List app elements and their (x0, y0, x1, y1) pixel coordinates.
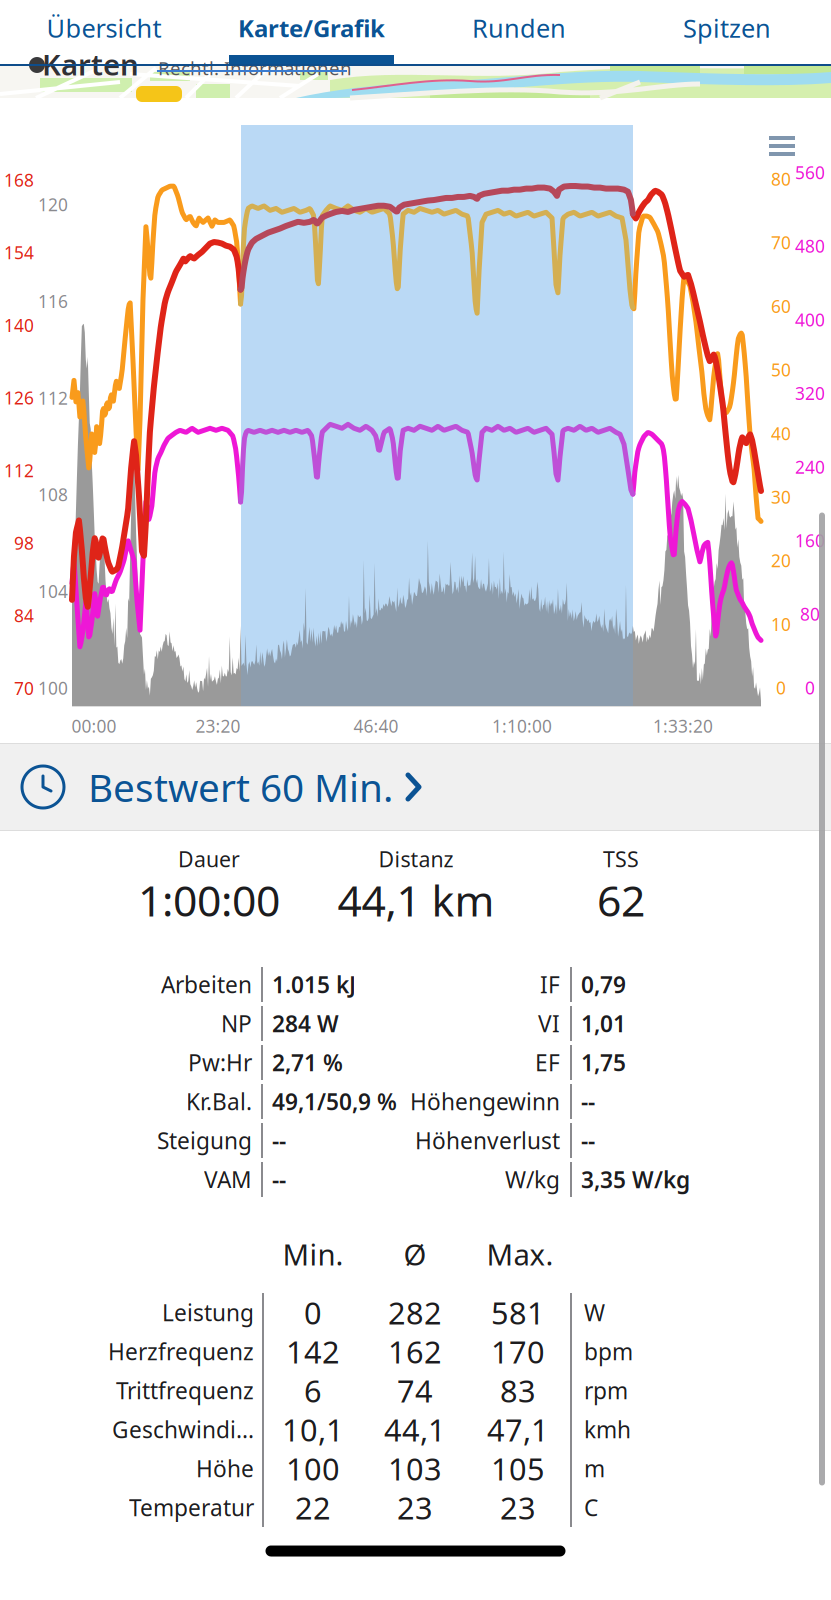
button[interactable]: Spitzen (623, 0, 831, 64)
staticText: 0 (805, 676, 815, 699)
staticText: EF (535, 1047, 560, 1077)
staticText: 1.015 kJ (272, 969, 356, 999)
staticText: 70 (14, 677, 34, 700)
staticText: 0 (304, 1292, 322, 1333)
staticText: -- (272, 1125, 286, 1155)
staticText: 62 (597, 872, 645, 928)
staticText: Kr.Bal. (186, 1086, 252, 1116)
staticText: Arbeiten (161, 969, 252, 999)
staticText: Geschwindi... (112, 1414, 254, 1444)
staticText: 480 (795, 235, 825, 258)
staticText: Min. (282, 1234, 343, 1273)
staticText: VAM (204, 1164, 252, 1194)
staticText: 170 (491, 1331, 545, 1372)
staticText: 108 (38, 483, 68, 506)
button[interactable]: Karte/Grafik (208, 0, 415, 64)
staticText: 60 (771, 295, 791, 318)
staticText: 44,1 km (337, 872, 494, 928)
staticText: 120 (38, 193, 68, 216)
staticText: Pw:Hr (188, 1047, 252, 1077)
staticText: 80 (800, 603, 820, 626)
staticText: Übersicht (46, 11, 161, 45)
staticText: Max. (486, 1234, 553, 1273)
staticText: Höhengewinn (410, 1086, 560, 1116)
staticText: W/kg (505, 1164, 560, 1194)
staticText: 2,71 % (272, 1047, 343, 1077)
staticText: -- (581, 1086, 595, 1116)
staticText: 40 (771, 422, 791, 445)
staticText: 160 (795, 529, 825, 552)
staticText: 23:20 (195, 714, 240, 737)
staticText: 162 (388, 1331, 442, 1372)
staticText: 3,35 W/kg (581, 1164, 690, 1194)
staticText: TSS (603, 845, 639, 873)
staticText: 104 (38, 580, 68, 603)
staticText: Leistung (162, 1297, 254, 1327)
staticText: 140 (4, 314, 34, 337)
staticText: 44,1 (384, 1409, 446, 1450)
staticText: Karten (42, 44, 139, 83)
staticText: 1,75 (581, 1047, 626, 1077)
staticText: Distanz (378, 845, 453, 873)
staticText: VI (538, 1008, 560, 1038)
staticText: 47,1 (487, 1409, 549, 1450)
staticText: 0,79 (581, 969, 626, 999)
staticText: 103 (388, 1448, 442, 1489)
staticText: W (584, 1297, 605, 1327)
staticText: Runden (472, 11, 566, 45)
staticText: 46:40 (353, 714, 398, 737)
staticText: 105 (491, 1448, 545, 1489)
staticText: 10 (771, 613, 791, 636)
staticText: 320 (795, 382, 825, 405)
staticText: 581 (491, 1292, 545, 1333)
staticText: Dauer (178, 845, 240, 873)
staticText: Bestwert 60 Min. (88, 761, 393, 813)
staticText: Steigung (157, 1125, 252, 1155)
staticText: 126 (4, 386, 34, 409)
staticText: 00:00 (71, 714, 116, 737)
staticText: 98 (14, 531, 34, 554)
staticText: 84 (14, 604, 34, 627)
staticText: -- (272, 1164, 286, 1194)
staticText: 560 (795, 161, 825, 184)
staticText: 80 (771, 167, 791, 190)
staticText: 1:10:00 (492, 714, 552, 737)
staticText: C (584, 1492, 598, 1522)
staticText: Trittfrequenz (116, 1375, 254, 1405)
staticText: 10,1 (282, 1409, 344, 1450)
staticText: 23 (500, 1487, 536, 1528)
staticText: Ø (403, 1234, 426, 1273)
staticText: 112 (4, 459, 34, 482)
staticText: 240 (795, 455, 825, 478)
staticText: 168 (4, 168, 34, 191)
staticText: 112 (38, 386, 68, 409)
button[interactable]: Chart options (769, 136, 795, 156)
staticText: IF (540, 969, 560, 999)
staticText: 49,1/50,9 % (272, 1086, 397, 1116)
staticText: Höhenverlust (415, 1125, 560, 1155)
staticText: Karte/Grafik (238, 12, 385, 44)
staticText: 83 (500, 1370, 536, 1411)
staticText: 284 W (272, 1008, 339, 1038)
staticText: kmh (584, 1414, 631, 1444)
staticText: 50 (771, 358, 791, 381)
staticText: 20 (771, 549, 791, 572)
staticText: 100 (286, 1448, 340, 1489)
staticText: Herzfrequenz (108, 1336, 254, 1366)
staticText: Temperatur (129, 1492, 254, 1522)
button[interactable]: Runden (415, 0, 623, 64)
staticText: 400 (795, 308, 825, 331)
staticText: 1,01 (581, 1008, 626, 1038)
staticText: 74 (397, 1370, 433, 1411)
staticText: Spitzen (683, 11, 771, 45)
staticText: 1:00:00 (138, 872, 280, 928)
staticText: NP (221, 1008, 252, 1038)
staticText: bpm (584, 1336, 633, 1366)
staticText: 142 (286, 1331, 340, 1372)
staticText: -- (581, 1125, 595, 1155)
button[interactable]: Übersicht (0, 0, 208, 64)
staticText: 1:33:20 (653, 714, 713, 737)
button[interactable]: Bestwert 60 Min. (0, 743, 831, 831)
staticText: 0 (776, 676, 786, 699)
staticText: m (584, 1453, 605, 1483)
